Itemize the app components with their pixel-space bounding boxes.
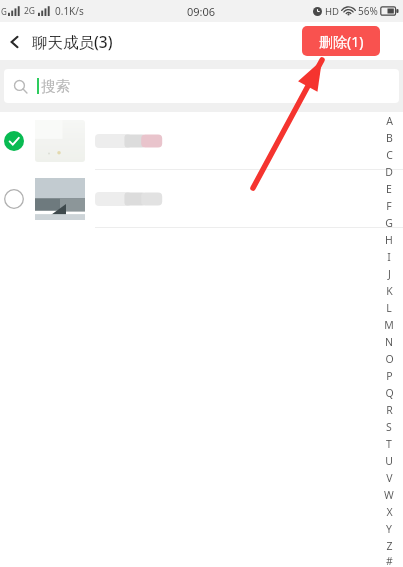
staticText: L xyxy=(386,301,392,315)
staticText: I xyxy=(387,250,391,264)
staticText: 0.1K/s xyxy=(55,4,84,18)
staticText: D xyxy=(385,165,393,179)
staticText: 56% xyxy=(358,4,378,18)
staticText: Z xyxy=(386,539,393,553)
other: Not selected xyxy=(4,189,24,209)
staticText: J xyxy=(388,267,391,281)
staticText: 删除(1) xyxy=(319,32,364,51)
button[interactable]: Alphabet index xyxy=(381,112,397,567)
staticText: B xyxy=(386,131,393,145)
staticText: # xyxy=(386,554,393,567)
staticText: R xyxy=(386,403,393,417)
staticText: 搜索 xyxy=(41,77,70,95)
staticText: 2G xyxy=(24,5,36,17)
staticText: N xyxy=(385,335,393,349)
staticText: K xyxy=(386,284,393,298)
other: Selected xyxy=(4,131,24,151)
staticText: O xyxy=(385,352,394,366)
staticText: C xyxy=(386,148,393,162)
staticText: Q xyxy=(385,386,394,400)
staticText: U xyxy=(385,454,393,468)
button[interactable]: Selected xyxy=(0,112,403,170)
other: Back xyxy=(8,35,22,49)
button[interactable]: 搜索 xyxy=(4,69,399,103)
staticText: 聊天成员(3) xyxy=(32,31,113,52)
staticText: A xyxy=(386,114,393,128)
button[interactable]: Not selected xyxy=(0,170,403,228)
staticText: V xyxy=(386,471,393,485)
staticText: HD xyxy=(325,5,339,18)
staticText: Y xyxy=(386,522,392,536)
staticText: 09:06 xyxy=(187,4,216,19)
staticText: W xyxy=(384,488,394,502)
staticText: F xyxy=(386,199,392,213)
button[interactable]: Back xyxy=(0,27,119,56)
staticText: E xyxy=(386,182,392,196)
button[interactable]: 删除(1) xyxy=(302,26,380,56)
staticText: S xyxy=(386,420,392,434)
staticText: H xyxy=(385,233,393,247)
staticText: M xyxy=(384,318,394,332)
staticText: G xyxy=(1,6,7,17)
staticText: G xyxy=(385,216,393,230)
staticText: P xyxy=(386,369,393,383)
staticText: X xyxy=(386,505,393,519)
staticText: T xyxy=(386,437,392,451)
